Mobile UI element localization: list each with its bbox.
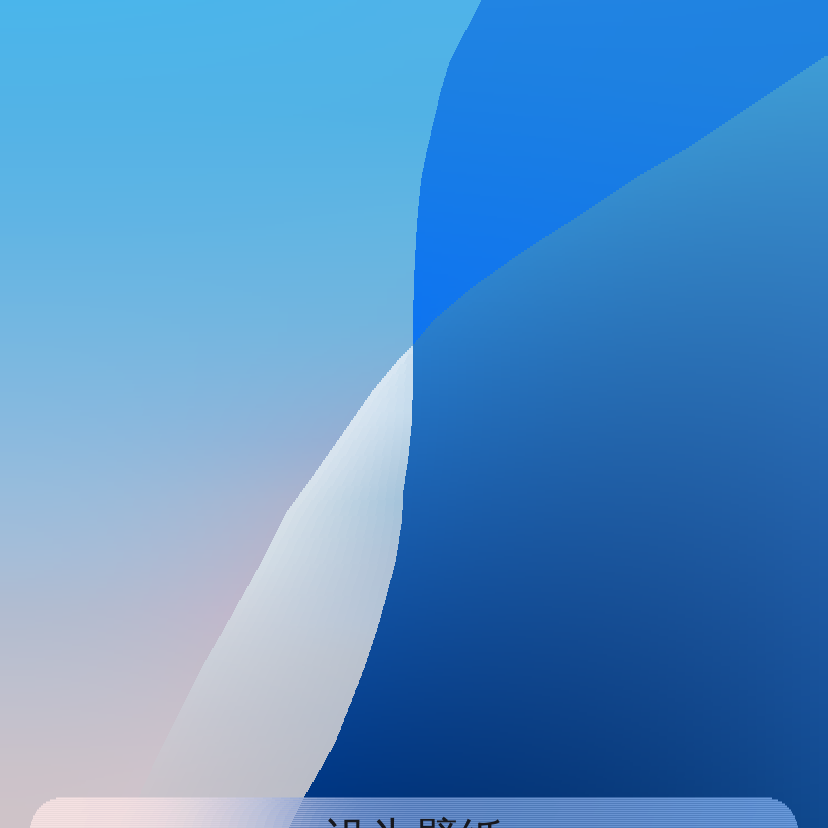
staticText: 设为壁纸 <box>324 812 504 828</box>
